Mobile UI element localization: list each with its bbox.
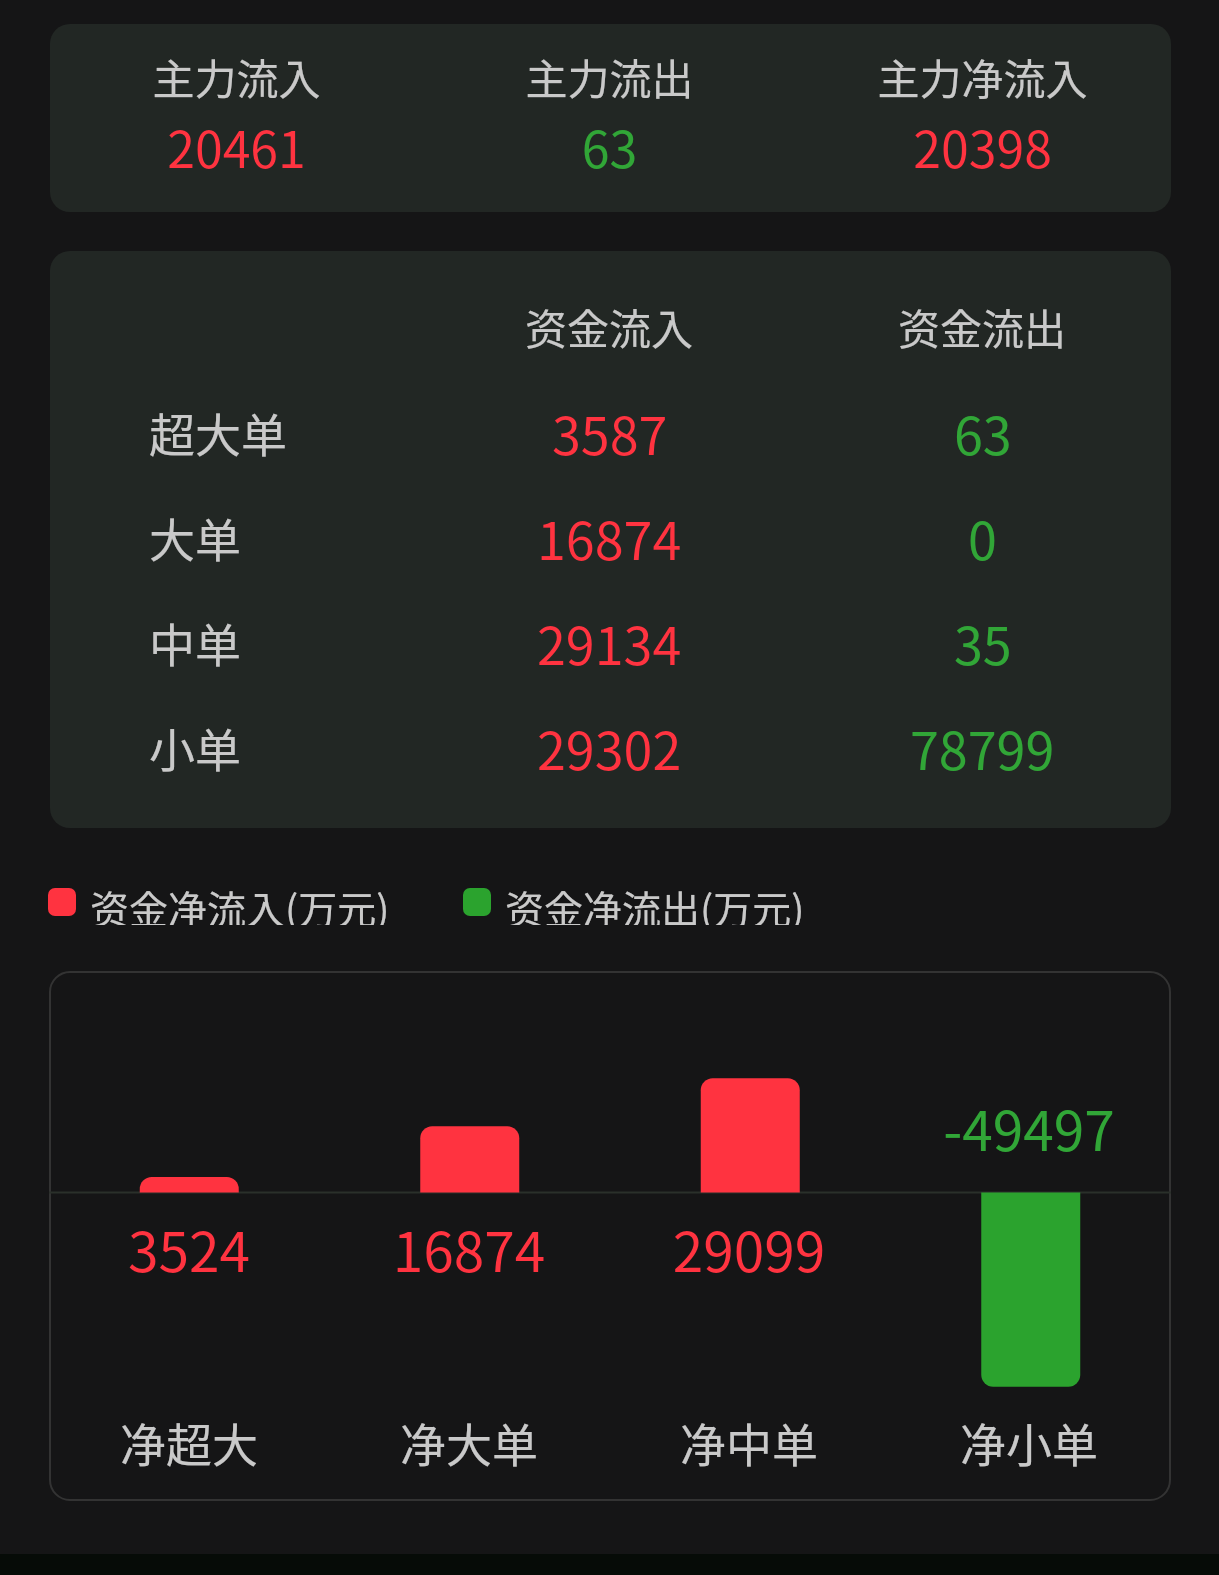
staticText: 主力流入 [50,46,423,107]
button[interactable]: 大单 [50,486,1171,589]
staticText: 净中单 [609,1409,889,1476]
button[interactable]: 小单 [50,696,1171,799]
staticText: 资金净流出(万元) [505,879,805,925]
button[interactable]: 16874 [329,971,609,1501]
button[interactable]: 资金净流出(万元) [463,879,805,925]
staticText: 3587 [552,395,668,470]
button[interactable]: 主力流入 [50,24,423,212]
button[interactable]: 中单 [50,591,1171,694]
staticText: 16874 [329,1208,609,1288]
button[interactable]: 超大单 [50,381,1171,484]
button[interactable]: 资金净流入(万元) [48,879,390,925]
other: 资金净流入柱状图 [49,971,1171,1501]
button[interactable]: 主力流出 [423,24,796,212]
staticText: 29099 [609,1208,889,1288]
staticText: 35 [954,605,1012,680]
staticText: 净小单 [889,1409,1169,1476]
staticText: 资金净流入(万元) [90,879,390,925]
staticText: -49497 [889,1087,1169,1167]
staticText: 主力净流入 [796,46,1169,107]
button[interactable]: 主力净流入 [796,24,1169,212]
staticText: 20398 [796,110,1169,182]
staticText: 主力流出 [423,46,796,107]
button[interactable]: -49497 [889,971,1169,1501]
staticText: 超大单 [149,399,287,466]
button[interactable]: 3524 [49,971,329,1501]
staticText: 小单 [149,714,241,781]
button[interactable]: 资金流入 [50,275,1171,378]
staticText: 0 [968,500,997,575]
staticText: 净超大 [49,1409,329,1476]
staticText: 净大单 [329,1409,609,1476]
staticText: 3524 [49,1208,329,1288]
staticText: 资金流入 [525,296,694,357]
staticText: 资金流出 [898,296,1067,357]
staticText: 29302 [537,710,682,785]
staticText: 16874 [537,500,682,575]
staticText: 29134 [537,605,682,680]
staticText: 63 [423,110,796,182]
staticText: 78799 [910,710,1055,785]
staticText: 63 [954,395,1012,470]
staticText: 20461 [50,110,423,182]
staticText: 中单 [149,609,241,676]
staticText: 大单 [149,504,241,571]
button[interactable]: 29099 [609,971,889,1501]
